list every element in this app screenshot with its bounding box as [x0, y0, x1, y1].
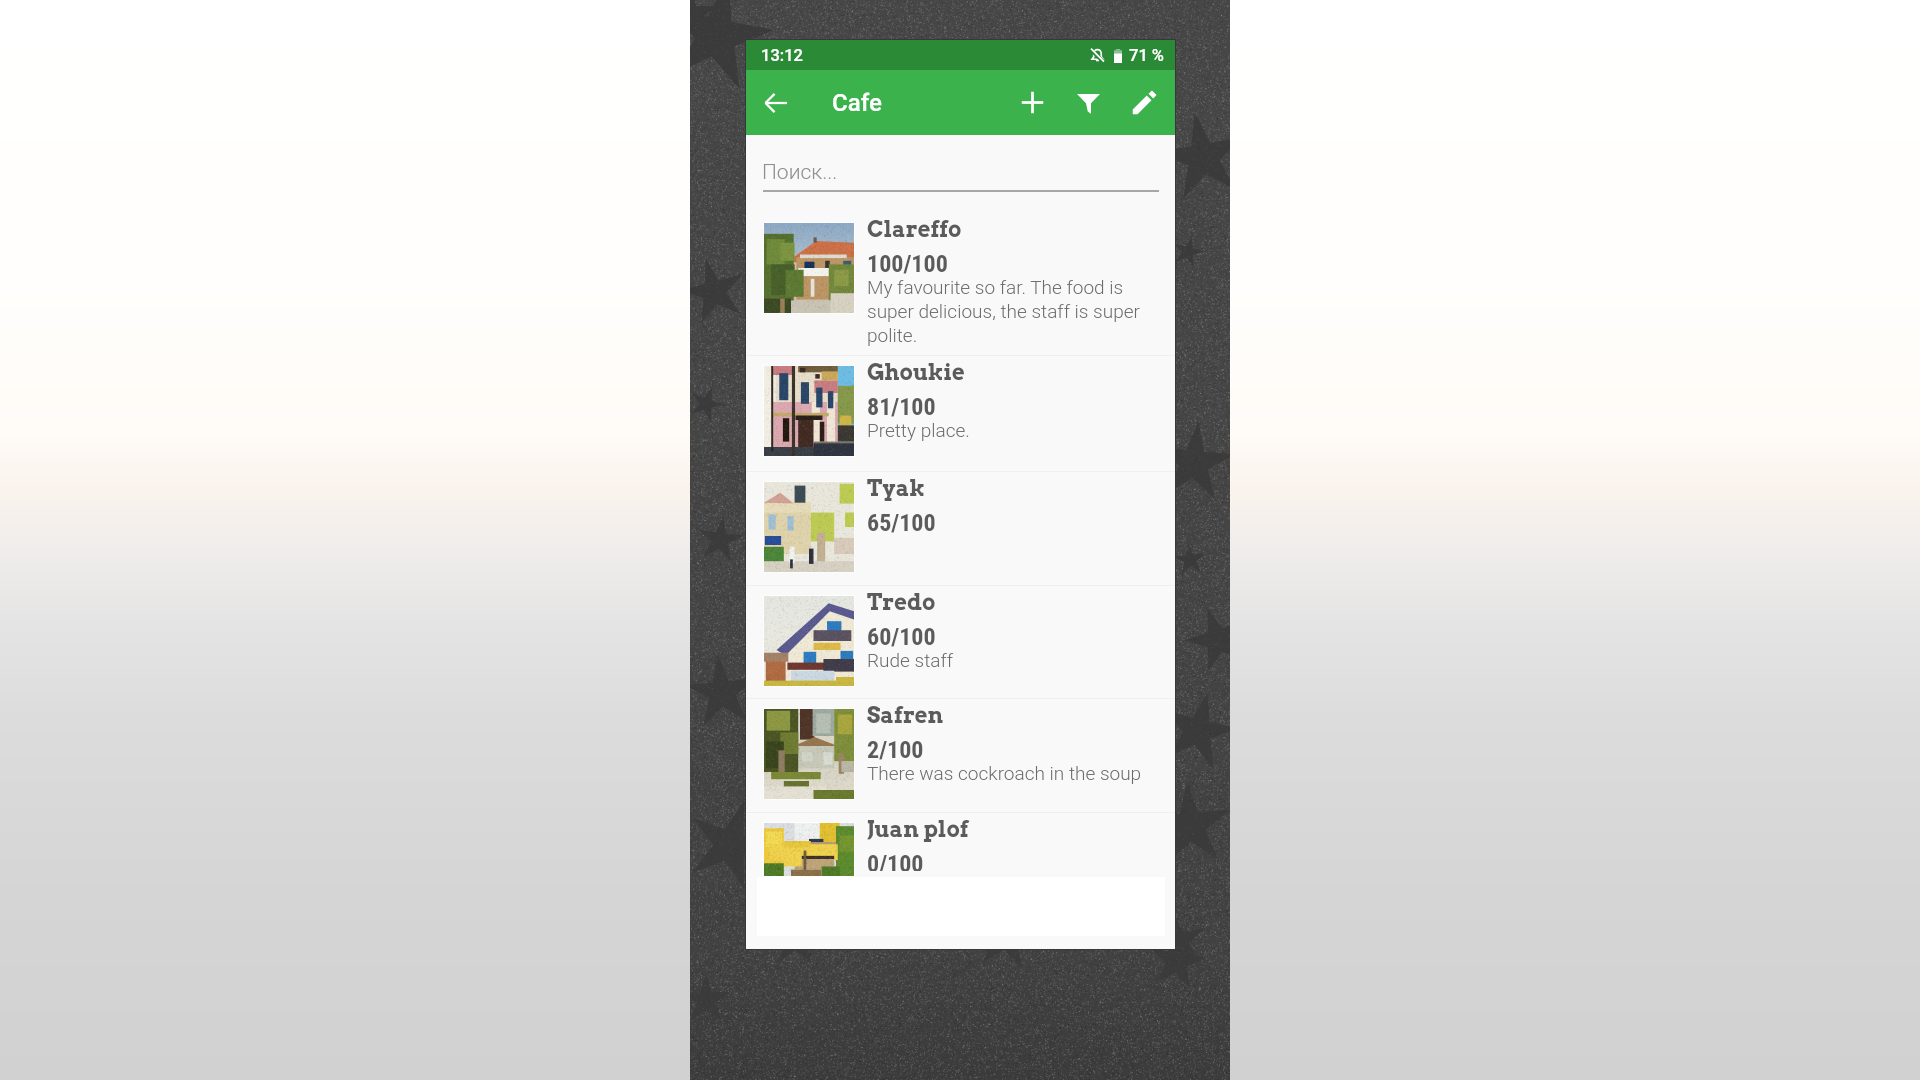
button[interactable]: Safren: [746, 699, 1175, 812]
button[interactable]: Back: [746, 70, 806, 135]
staticText: Juan plof: [867, 816, 969, 843]
button[interactable]: Filter: [1066, 70, 1110, 135]
staticText: Поиск...: [762, 160, 838, 185]
staticText: There was cockroach in the soup: [867, 762, 1155, 784]
staticText: 65/100: [867, 509, 936, 537]
staticText: Clareffo: [867, 216, 962, 243]
staticText: Tredo: [867, 589, 936, 616]
staticText: 60/100: [867, 623, 936, 651]
staticText: Rude staff: [867, 649, 1155, 671]
button[interactable]: Ghoukie: [746, 356, 1175, 471]
button[interactable]: Juan plof: [746, 813, 1175, 877]
staticText: 2/100: [867, 736, 924, 764]
button[interactable]: Tredo: [746, 586, 1175, 698]
staticText: 100/100: [867, 250, 948, 278]
button[interactable]: Поиск...: [746, 135, 1175, 213]
staticText: Tyak: [867, 475, 926, 502]
staticText: Safren: [867, 702, 944, 729]
staticText: Ghoukie: [867, 359, 965, 386]
button[interactable]: Tyak: [746, 472, 1175, 585]
button[interactable]: Clareffo: [746, 213, 1175, 355]
staticText: 0/100: [867, 850, 924, 871]
button[interactable]: Add: [1010, 70, 1054, 135]
staticText: My favourite so far. The food is super d…: [867, 276, 1155, 347]
staticText: Pretty place.: [867, 419, 1155, 441]
staticText: Cafe: [832, 89, 882, 117]
button[interactable]: Edit: [1122, 70, 1166, 135]
staticText: 71 %: [1129, 46, 1164, 65]
staticText: 81/100: [867, 393, 936, 421]
staticText: 13:12: [761, 46, 803, 65]
